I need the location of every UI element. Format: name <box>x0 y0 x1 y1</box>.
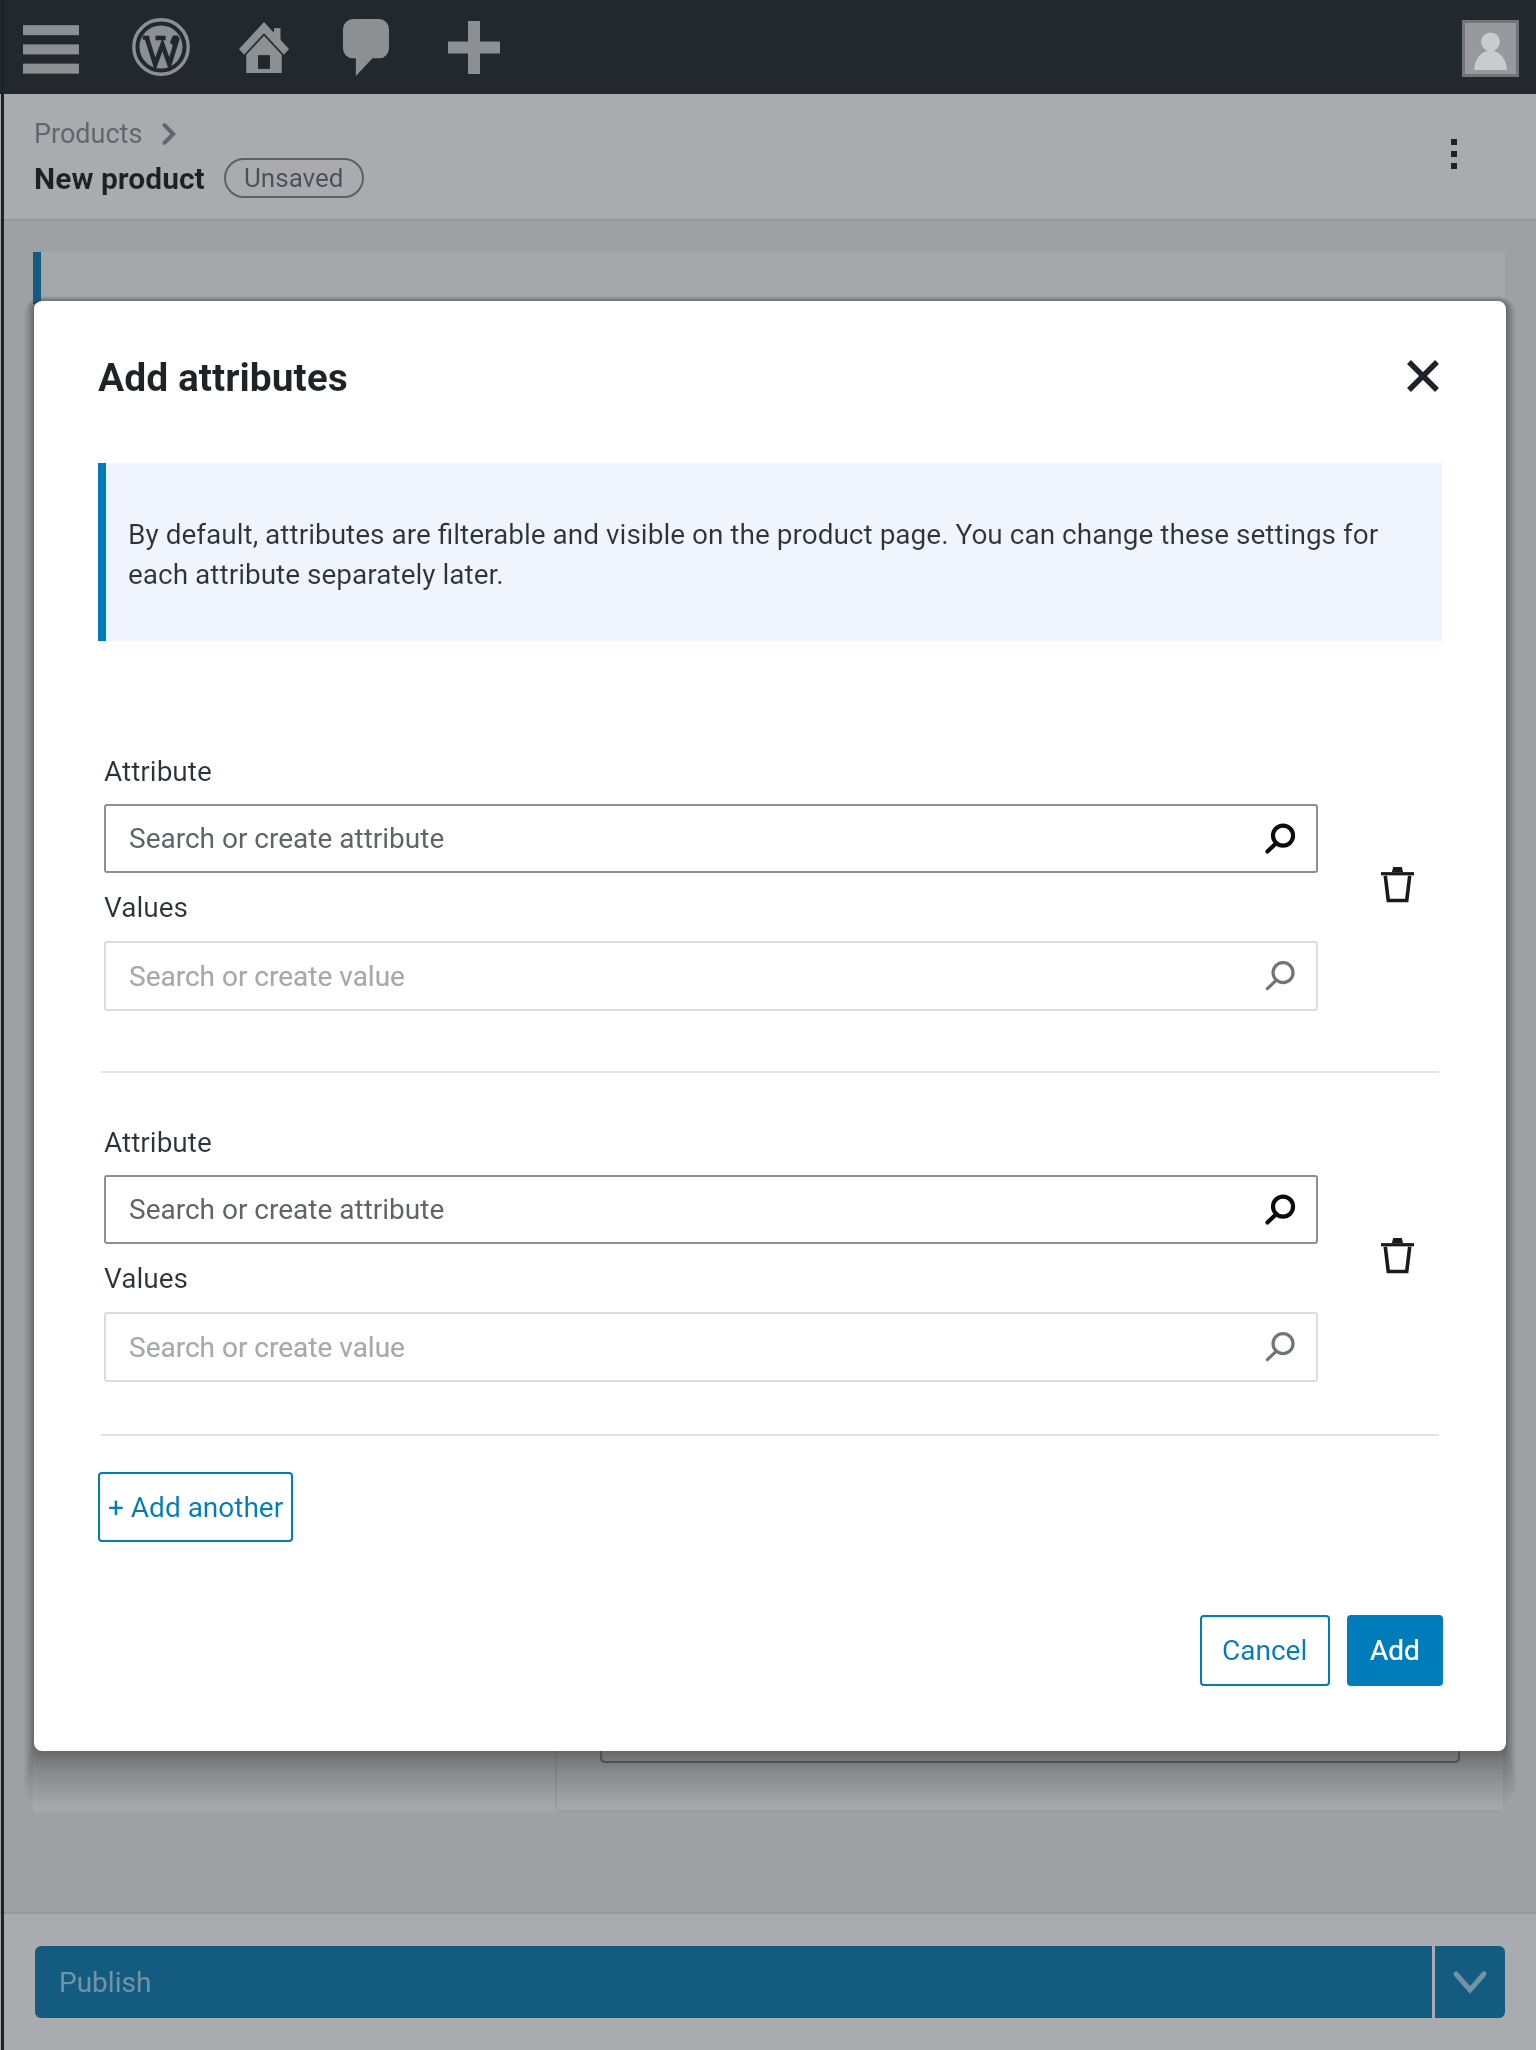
button[interactable]: Add <box>1347 1615 1443 1686</box>
staticText: Add <box>1370 1634 1420 1667</box>
button[interactable]: Remove attribute <box>1360 847 1434 921</box>
button[interactable]: Comments <box>324 0 408 94</box>
button[interactable]: Search or create value <box>104 941 1318 1011</box>
button[interactable]: Search or create attribute <box>104 804 1318 873</box>
staticText: Search or create value <box>129 1331 405 1364</box>
staticText: Search or create value <box>129 960 405 993</box>
button[interactable]: Close <box>1394 347 1452 405</box>
staticText: Unsaved <box>244 163 344 193</box>
button[interactable]: My account <box>1454 12 1526 84</box>
staticText: Attribute <box>104 755 212 788</box>
staticText: Add attributes <box>98 355 348 401</box>
button[interactable]: + Add another <box>98 1472 293 1542</box>
button[interactable]: Publish options <box>1435 1946 1505 2018</box>
staticText: Search or create attribute <box>129 1193 445 1226</box>
button[interactable]: Cancel <box>1200 1615 1330 1686</box>
button[interactable]: Remove attribute <box>1360 1218 1434 1292</box>
staticText: Cancel <box>1222 1634 1308 1667</box>
button[interactable]: Home <box>222 0 306 94</box>
button[interactable]: Publish <box>35 1946 1432 2018</box>
staticText: + Add another <box>108 1491 284 1524</box>
staticText: Values <box>104 891 188 924</box>
button[interactable]: Search or create value <box>104 1312 1318 1382</box>
staticText: Publish <box>59 1966 152 1999</box>
staticText: By default, attributes are filterable an… <box>128 518 1390 591</box>
staticText: Products <box>34 118 143 150</box>
button[interactable]: WordPress <box>119 0 203 94</box>
staticText: New product <box>34 161 205 196</box>
button[interactable]: More options <box>1430 130 1478 178</box>
button[interactable]: New content <box>432 0 516 94</box>
button[interactable]: Search or create attribute <box>104 1175 1318 1244</box>
staticText: Values <box>104 1262 188 1295</box>
staticText: Attribute <box>104 1126 212 1159</box>
staticText: Search or create attribute <box>129 822 445 855</box>
button[interactable]: Menu <box>9 0 93 94</box>
